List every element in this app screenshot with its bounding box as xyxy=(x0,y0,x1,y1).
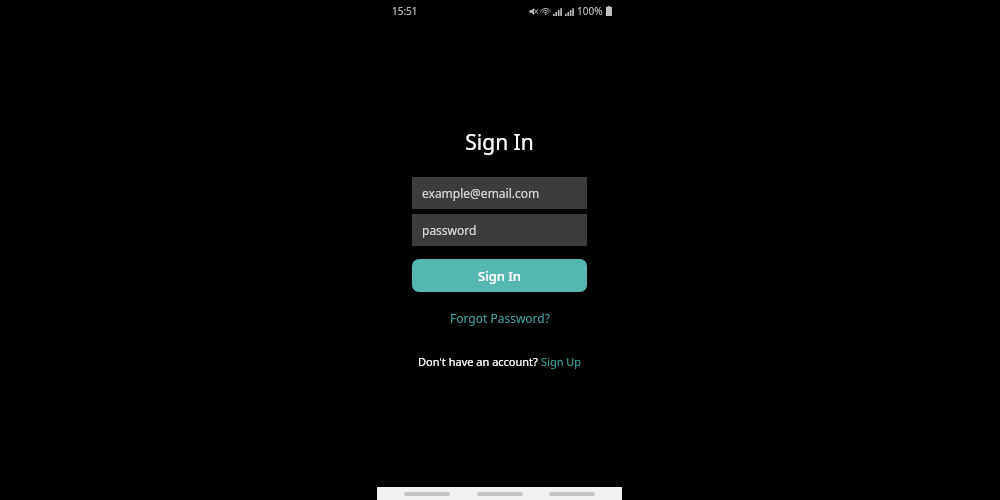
staticText: Don't have an account? xyxy=(418,354,541,369)
button[interactable]: password xyxy=(412,214,587,246)
staticText: 15:51 xyxy=(392,4,418,18)
button[interactable]: Navigation xyxy=(549,489,595,499)
button[interactable]: Navigation xyxy=(477,489,523,499)
staticText: example@email.com xyxy=(422,185,540,201)
button[interactable]: Navigation xyxy=(404,489,450,499)
button[interactable]: Sign In xyxy=(412,259,587,292)
button[interactable]: example@email.com xyxy=(412,177,587,209)
button[interactable]: Forgot Password? xyxy=(377,306,622,330)
button[interactable]: Sign Up xyxy=(541,354,582,369)
staticText: Forgot Password? xyxy=(450,310,550,326)
staticText: Sign In xyxy=(377,128,622,157)
staticText: Sign Up xyxy=(541,354,582,369)
staticText: Sign In xyxy=(478,267,522,285)
staticText: password xyxy=(422,222,477,238)
staticText: 100% xyxy=(577,4,603,18)
